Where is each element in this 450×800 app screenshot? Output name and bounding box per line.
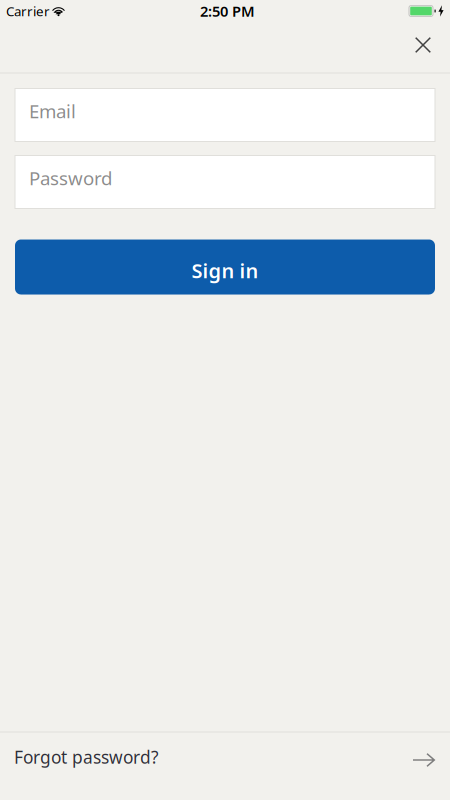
- staticText: Forgot password?: [14, 745, 159, 768]
- staticText: Carrier: [6, 2, 50, 20]
- button[interactable]: Forgot password?: [0, 733, 450, 787]
- button[interactable]: Sign in: [15, 239, 435, 294]
- button[interactable]: Password: [15, 155, 435, 208]
- button[interactable]: Email: [15, 88, 435, 141]
- button[interactable]: Close: [403, 25, 443, 65]
- staticText: 2:50 PM: [200, 1, 255, 21]
- staticText: Password: [29, 166, 112, 190]
- staticText: Sign in: [191, 257, 258, 284]
- staticText: Email: [29, 99, 76, 123]
